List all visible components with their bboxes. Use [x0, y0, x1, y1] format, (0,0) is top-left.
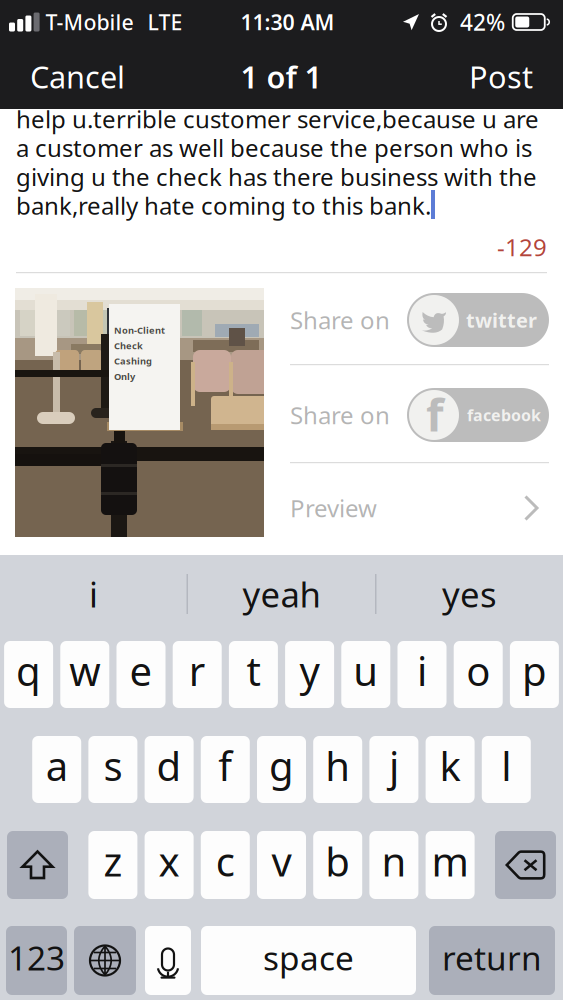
staticText: y [300, 644, 320, 697]
staticText: f [218, 739, 232, 792]
button[interactable]: w [60, 641, 109, 708]
staticText: Cancel [30, 56, 125, 97]
staticText: 1 of 1 [240, 56, 322, 97]
button[interactable]: l [482, 736, 531, 803]
staticText: a customer as well because the person wh… [16, 132, 532, 164]
button[interactable]: i [397, 641, 446, 708]
staticText: yeah [242, 571, 320, 617]
button[interactable]: Share on [290, 271, 549, 369]
button[interactable]: Share on [290, 366, 549, 464]
staticText: u [353, 644, 378, 697]
button[interactable]: z [88, 831, 137, 899]
staticText: x [159, 834, 180, 887]
button[interactable]: k [426, 736, 475, 803]
button[interactable]: c [201, 831, 250, 899]
button[interactable]: Post [455, 46, 547, 106]
staticText: k [440, 739, 461, 792]
button[interactable]: Next keyboard [74, 926, 136, 995]
staticText: h [325, 739, 350, 792]
staticText: q [16, 644, 41, 697]
staticText: Non-Client [114, 324, 165, 336]
staticText: 42% [460, 7, 505, 37]
button[interactable]: yes [376, 563, 562, 625]
button[interactable]: f [201, 736, 250, 803]
button[interactable]: Cancel [16, 46, 139, 106]
button[interactable]: Shift [7, 831, 68, 899]
button[interactable]: yeah [188, 563, 375, 625]
button[interactable]: g [257, 736, 306, 803]
staticText: i [89, 571, 98, 617]
staticText: -129 [497, 231, 547, 263]
staticText: Preview [290, 492, 377, 524]
staticText: l [501, 739, 511, 792]
staticText: t [246, 644, 260, 697]
button[interactable]: b [313, 831, 362, 899]
button[interactable]: q [4, 641, 53, 708]
staticText: c [216, 834, 235, 887]
staticText: v [271, 834, 291, 887]
staticText: g [269, 739, 294, 792]
button[interactable]: d [145, 736, 194, 803]
staticText: z [103, 834, 122, 887]
button[interactable]: Backspace [495, 831, 556, 899]
staticText: s [103, 739, 122, 792]
button[interactable]: Preview [290, 459, 549, 557]
button[interactable]: space [201, 926, 416, 995]
button[interactable]: p [510, 641, 559, 708]
button[interactable]: m [426, 831, 475, 899]
button[interactable]: e [116, 641, 165, 708]
staticText: n [381, 834, 406, 887]
staticText: i [417, 644, 427, 697]
staticText: space [263, 935, 354, 980]
staticText: LTE [148, 8, 183, 36]
staticText: Check [114, 339, 143, 352]
button[interactable]: x [145, 831, 194, 899]
staticText: twitter [466, 307, 537, 333]
staticText: Share on [290, 304, 390, 336]
staticText: return [442, 935, 542, 980]
staticText: help u.terrible customer service,because… [16, 103, 539, 135]
staticText: facebook [467, 404, 541, 426]
staticText: Share on [290, 399, 390, 431]
staticText: Cashing [114, 355, 152, 367]
staticText: o [466, 644, 490, 697]
staticText: m [432, 834, 469, 887]
button[interactable]: a [32, 736, 81, 803]
button[interactable]: n [369, 831, 418, 899]
button[interactable]: h [313, 736, 362, 803]
staticText: b [325, 834, 350, 887]
button[interactable]: 123 [6, 926, 67, 995]
button[interactable]: u [341, 641, 390, 708]
button[interactable]: t [229, 641, 278, 708]
staticText: d [157, 739, 182, 792]
button[interactable]: y [285, 641, 334, 708]
button[interactable]: s [88, 736, 137, 803]
button[interactable]: j [369, 736, 418, 803]
staticText: p [522, 644, 547, 697]
staticText: yes [442, 571, 497, 617]
staticText: e [129, 644, 152, 697]
button[interactable]: i [0, 563, 186, 625]
staticText: giving u the check has there business wi… [16, 161, 537, 193]
staticText: T-Mobile [46, 8, 134, 36]
staticText: r [189, 644, 206, 697]
staticText: w [69, 644, 100, 697]
staticText: 123 [8, 935, 65, 980]
staticText: 11:30 AM [240, 8, 334, 36]
staticText: bank,really hate coming to this bank. [16, 190, 431, 221]
staticText: a [46, 739, 68, 792]
button[interactable]: Dictation [145, 926, 191, 995]
button[interactable]: return [429, 926, 555, 995]
staticText: Post [469, 56, 533, 97]
staticText: Only [114, 370, 135, 383]
staticText: f [426, 384, 444, 444]
staticText: j [389, 739, 399, 792]
button[interactable]: r [173, 641, 222, 708]
button[interactable]: o [454, 641, 503, 708]
button[interactable]: v [257, 831, 306, 899]
